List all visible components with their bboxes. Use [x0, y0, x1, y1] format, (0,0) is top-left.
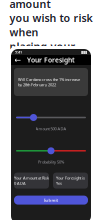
staticText: ←	[14, 55, 21, 65]
staticText: Will Cardano cross the 1% increase by 28…	[18, 77, 80, 87]
staticText: Amount 500 ADA	[35, 126, 66, 131]
staticText: Your Foresight	[27, 56, 75, 64]
staticText: Submit	[43, 197, 58, 203]
button[interactable]: Submit	[11, 196, 91, 205]
staticText: ▮▮▮	[81, 50, 87, 54]
staticText: Choose the amount you wish to risk when …	[9, 0, 92, 67]
staticText: Probability 50%	[38, 159, 64, 165]
staticText: 9:41	[15, 49, 22, 55]
staticText: Your Foresight is Yes	[56, 175, 85, 186]
staticText: Your Amount at Risk 0 ADA	[14, 175, 49, 186]
button[interactable]: Back	[14, 56, 22, 64]
